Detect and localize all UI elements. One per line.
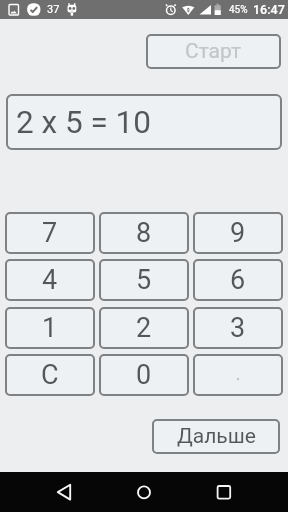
staticText: 1 bbox=[42, 312, 58, 344]
staticText: Старт bbox=[185, 39, 242, 64]
button[interactable]: Дальше bbox=[152, 419, 280, 454]
staticText: 4 bbox=[42, 264, 58, 296]
button[interactable] bbox=[200, 472, 248, 512]
staticText: 16:47 bbox=[253, 2, 285, 17]
button[interactable]: 2 bbox=[99, 307, 189, 349]
staticText: 0 bbox=[136, 359, 152, 391]
staticText: 3 bbox=[230, 312, 246, 344]
button[interactable] bbox=[120, 472, 168, 512]
button[interactable] bbox=[193, 354, 283, 396]
staticText: 45% bbox=[229, 4, 248, 16]
staticText: 8 bbox=[136, 217, 152, 249]
staticText: 2 x 5 = 10 bbox=[16, 104, 151, 141]
button[interactable]: 2 x 5 = 10 bbox=[6, 94, 282, 150]
button[interactable]: 5 bbox=[99, 259, 189, 301]
staticText: 7 bbox=[42, 217, 58, 249]
button[interactable]: 8 bbox=[99, 212, 189, 254]
button[interactable] bbox=[40, 472, 88, 512]
button[interactable]: 6 bbox=[193, 259, 283, 301]
staticText: 9 bbox=[230, 217, 246, 249]
staticText: 6 bbox=[230, 264, 246, 296]
button[interactable]: 1 bbox=[5, 307, 95, 349]
staticText: C bbox=[41, 359, 59, 391]
button[interactable]: C bbox=[5, 354, 95, 396]
button[interactable]: 3 bbox=[193, 307, 283, 349]
staticText: 5 bbox=[136, 264, 152, 296]
button[interactable]: Старт bbox=[146, 34, 281, 69]
button[interactable]: 4 bbox=[5, 259, 95, 301]
button[interactable]: 7 bbox=[5, 212, 95, 254]
staticText: 2 bbox=[136, 312, 152, 344]
button[interactable]: 0 bbox=[99, 354, 189, 396]
staticText: 37 bbox=[47, 3, 60, 16]
button[interactable]: 9 bbox=[193, 212, 283, 254]
staticText: Дальше bbox=[177, 424, 256, 449]
